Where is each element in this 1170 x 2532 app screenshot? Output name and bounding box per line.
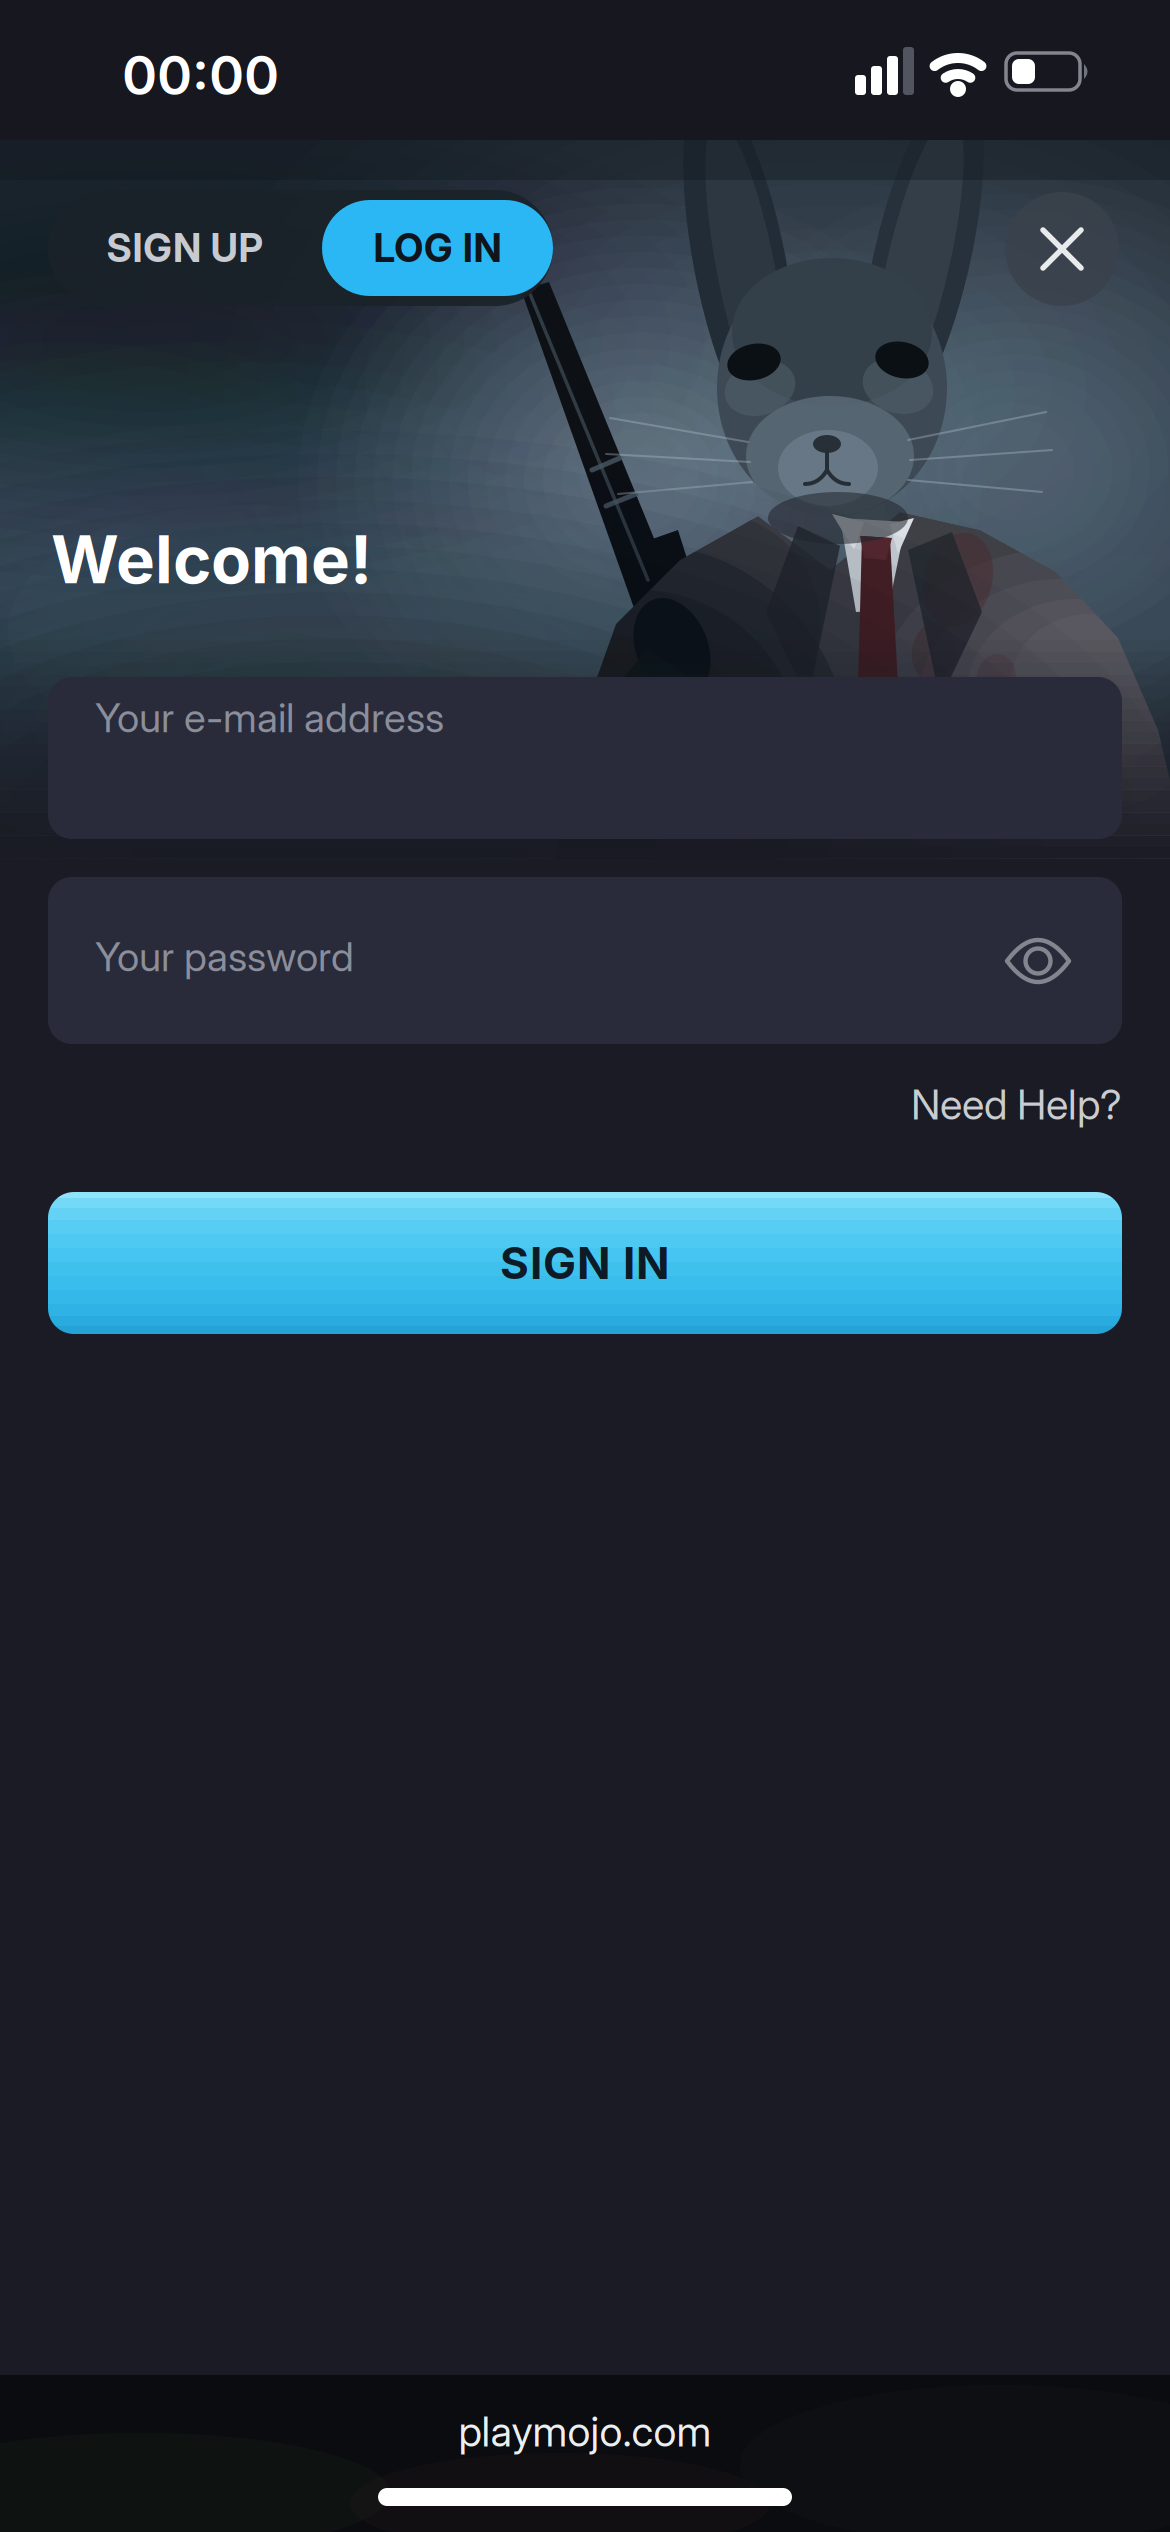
staticText: Need Help? bbox=[911, 1080, 1122, 1129]
staticText: Welcome! bbox=[51, 521, 372, 598]
staticText: Your e-mail address bbox=[95, 694, 444, 741]
staticText: SIGN UP bbox=[107, 225, 263, 271]
staticText: SIGN IN bbox=[500, 1237, 670, 1289]
staticText: playmojo.com bbox=[458, 2407, 711, 2456]
staticText: LOG IN bbox=[373, 225, 501, 271]
staticText: 00:00 bbox=[122, 44, 279, 107]
staticText: Your password bbox=[95, 933, 354, 980]
